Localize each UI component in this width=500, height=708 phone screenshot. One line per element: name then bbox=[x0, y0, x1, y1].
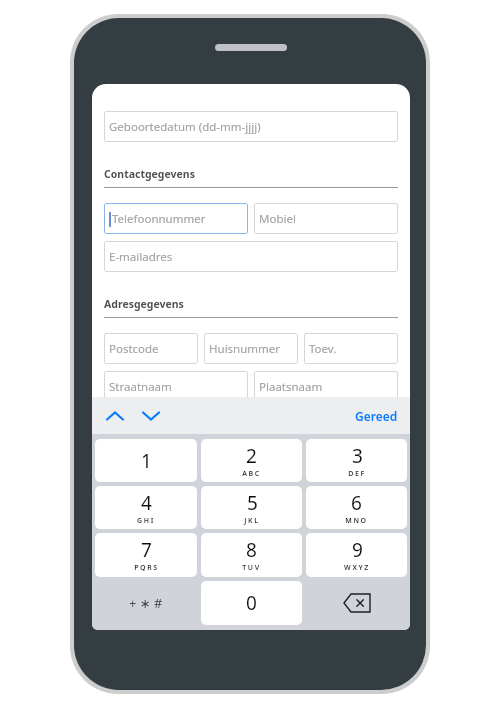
button[interactable]: Huisnummer bbox=[204, 333, 298, 364]
staticText: 6 bbox=[351, 490, 362, 516]
button[interactable]: 0 bbox=[201, 581, 302, 625]
staticText: Toev. bbox=[309, 341, 337, 357]
staticText: Telefoonnummer bbox=[112, 211, 206, 227]
staticText: E-mailadres bbox=[109, 249, 173, 265]
button[interactable]: Postcode bbox=[104, 333, 198, 364]
staticText: 2 bbox=[246, 443, 257, 469]
button[interactable]: 4 bbox=[95, 486, 197, 529]
button[interactable]: 9 bbox=[306, 533, 407, 577]
button[interactable]: 8 bbox=[201, 533, 302, 577]
staticText: DEF bbox=[348, 469, 366, 479]
staticText: MNO bbox=[345, 516, 368, 526]
staticText: + ∗ # bbox=[129, 594, 163, 612]
button[interactable]: 2 bbox=[201, 439, 302, 482]
button[interactable]: Geboortedatum (dd-mm-jjjj) bbox=[104, 111, 398, 142]
button[interactable]: Previous field bbox=[102, 403, 128, 429]
button[interactable]: Next field bbox=[138, 403, 164, 429]
button[interactable]: Toev. bbox=[304, 333, 398, 364]
staticText: 0 bbox=[246, 590, 257, 616]
staticText: 9 bbox=[352, 537, 363, 563]
button[interactable]: Backspace bbox=[306, 581, 407, 625]
staticText: PQRS bbox=[134, 563, 159, 573]
button[interactable]: 3 bbox=[306, 439, 407, 482]
button[interactable]: E-mailadres bbox=[104, 241, 398, 272]
button[interactable]: Telefoonnummer bbox=[104, 203, 248, 234]
staticText: TUV bbox=[242, 563, 261, 573]
staticText: 5 bbox=[247, 490, 258, 516]
staticText: 4 bbox=[141, 490, 152, 516]
staticText: Plaatsnaam bbox=[259, 379, 323, 395]
staticText: Adresgegevens bbox=[104, 297, 184, 311]
staticText: GHI bbox=[137, 516, 155, 526]
staticText: Straatnaam bbox=[109, 379, 172, 395]
button[interactable]: 7 bbox=[95, 533, 197, 577]
staticText: WXYZ bbox=[344, 563, 370, 573]
button[interactable]: Mobiel bbox=[254, 203, 398, 234]
staticText: 8 bbox=[246, 537, 257, 563]
staticText: 7 bbox=[141, 537, 152, 563]
staticText: Gereed bbox=[355, 408, 398, 424]
button[interactable]: 1 bbox=[95, 439, 197, 482]
staticText: ABC bbox=[242, 469, 261, 479]
staticText: Huisnummer bbox=[209, 341, 281, 357]
button[interactable]: 6 bbox=[306, 486, 407, 529]
button[interactable]: Gereed bbox=[343, 402, 410, 430]
staticText: Geboortedatum (dd-mm-jjjj) bbox=[109, 119, 261, 135]
staticText: Contactgegevens bbox=[104, 167, 195, 181]
button[interactable]: Plaatsnaam bbox=[254, 371, 398, 402]
staticText: 1 bbox=[141, 448, 152, 474]
staticText: 3 bbox=[352, 443, 363, 469]
staticText: Mobiel bbox=[259, 211, 296, 227]
button[interactable]: 5 bbox=[201, 486, 302, 529]
button[interactable]: + ∗ # bbox=[95, 581, 197, 625]
staticText: Postcode bbox=[109, 341, 159, 357]
staticText: JKL bbox=[244, 516, 260, 526]
button[interactable]: Straatnaam bbox=[104, 371, 248, 402]
